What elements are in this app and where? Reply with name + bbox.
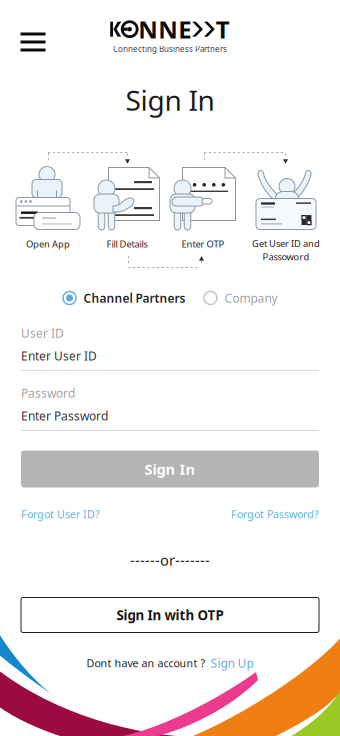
staticText: Enter Password xyxy=(21,408,108,424)
button[interactable]: Company xyxy=(203,290,277,306)
staticText: Open App xyxy=(26,238,70,250)
staticText: Fill Details xyxy=(106,238,147,250)
staticText: Forgot Password? xyxy=(231,507,319,521)
staticText: Get User ID and xyxy=(252,237,320,249)
staticText: Connecting Business Partners xyxy=(113,44,227,54)
staticText: Passoword xyxy=(262,250,309,263)
staticText: Sign Up xyxy=(210,655,253,671)
button[interactable]: Sign In xyxy=(21,450,319,487)
staticText: Enter OTP xyxy=(181,238,224,250)
staticText: Sign In xyxy=(144,459,195,479)
staticText: NNE xyxy=(138,13,191,45)
staticText: T xyxy=(216,13,230,45)
staticText: Channel Partners xyxy=(83,290,185,306)
staticText: Sign In with OTP xyxy=(116,606,223,624)
staticText: Password xyxy=(21,385,75,401)
button[interactable]: Sign In with OTP xyxy=(21,597,319,632)
staticText: Company xyxy=(224,290,277,306)
staticText: Enter User ID xyxy=(21,348,97,364)
button[interactable]: Forgot Password? xyxy=(231,507,319,521)
staticText: Forgot User ID? xyxy=(21,507,100,521)
button[interactable]: Channel Partners xyxy=(62,290,185,306)
button[interactable]: Menu xyxy=(11,23,54,60)
staticText: Sign In xyxy=(125,81,214,119)
staticText: Dont have an account ? xyxy=(86,656,205,670)
staticText: ------or------- xyxy=(130,550,210,570)
button[interactable]: Forgot User ID? xyxy=(21,507,100,521)
staticText: User ID xyxy=(21,325,64,341)
button[interactable]: Sign Up xyxy=(210,655,253,671)
